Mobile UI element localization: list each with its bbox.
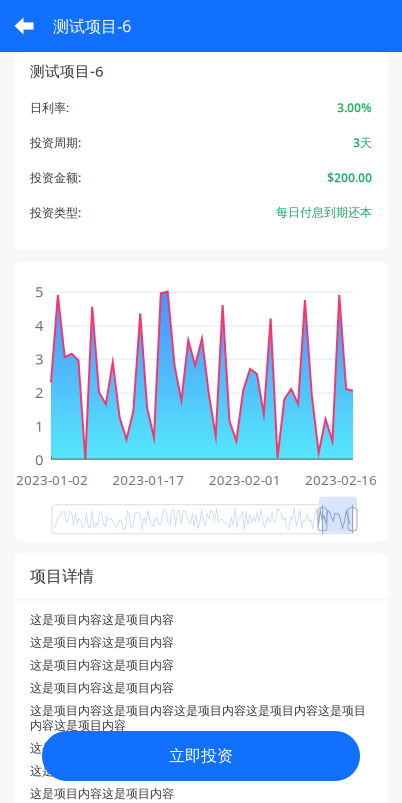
- staticText: 投资金额:: [30, 169, 81, 185]
- staticText: 2023-02-01: [209, 471, 281, 489]
- staticText: 投资周期:: [30, 134, 81, 150]
- staticText: 2023-02-16: [305, 471, 377, 489]
- staticText: 3.00%: [337, 99, 372, 115]
- staticText: 1: [35, 416, 43, 436]
- staticText: 测试项目-6: [53, 15, 131, 37]
- staticText: 这是项目内容这是项目内容: [30, 741, 174, 755]
- button[interactable]: Back: [0, 0, 48, 52]
- staticText: 这是项目内容这是项目内容: [30, 612, 174, 627]
- staticText: 3: [35, 349, 43, 369]
- staticText: 这是项目内容这是项目内容: [30, 763, 174, 778]
- staticText: 日利率:: [30, 99, 69, 115]
- staticText: 每日付息到期还本: [276, 205, 372, 220]
- staticText: 这是项目内容这是项目内容: [30, 658, 174, 672]
- staticText: 3天: [353, 134, 372, 150]
- staticText: 投资类型:: [30, 204, 81, 220]
- staticText: 2: [35, 383, 43, 402]
- staticText: 这是项目内容这是项目内容: [30, 786, 174, 801]
- staticText: 2023-01-02: [16, 471, 88, 489]
- staticText: 测试项目-6: [30, 61, 103, 81]
- staticText: 这是项目内容这是项目内容这是项目内容这是项目内容这是项目内容这是项目内容: [30, 703, 366, 733]
- staticText: 4: [35, 315, 43, 335]
- staticText: 立即投资: [169, 746, 233, 766]
- staticText: 2023-01-17: [112, 471, 184, 489]
- staticText: 这是项目内容这是项目内容: [30, 681, 174, 695]
- staticText: 5: [35, 282, 43, 301]
- button[interactable]: 立即投资: [42, 731, 360, 781]
- staticText: $200.00: [327, 169, 372, 185]
- staticText: 项目详情: [30, 567, 94, 586]
- staticText: 这是项目内容这是项目内容: [30, 635, 174, 650]
- staticText: 0: [35, 450, 43, 469]
